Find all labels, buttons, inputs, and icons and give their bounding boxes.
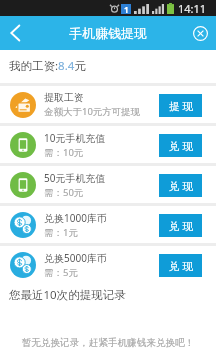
- button[interactable]: 提 现: [159, 94, 202, 117]
- staticText: 50元手机充值: [44, 171, 106, 185]
- staticText: 提取工资: [44, 91, 84, 104]
- staticText: 兑换5000库币: [44, 251, 107, 265]
- button[interactable]: Close: [184, 16, 216, 50]
- button[interactable]: 兑 现: [159, 134, 202, 157]
- staticText: 需：1元: [44, 226, 78, 239]
- button[interactable]: 兑 现: [159, 174, 202, 197]
- staticText: 需：5元: [44, 266, 78, 279]
- staticText: 金额大于10元方可提现: [44, 105, 141, 118]
- staticText: 提 现: [169, 99, 193, 113]
- staticText: 需：10元: [44, 146, 84, 159]
- button[interactable]: 50元手机充值: [0, 166, 216, 203]
- staticText: 兑 现: [169, 139, 193, 153]
- staticText: 兑 现: [169, 219, 193, 233]
- button[interactable]: 兑 现: [159, 254, 202, 277]
- staticText: 14:11: [178, 1, 207, 16]
- button[interactable]: 10元手机充值: [0, 126, 216, 163]
- staticText: 兑换1000库币: [44, 211, 107, 225]
- staticText: 我的工资:8.4元: [9, 58, 86, 74]
- staticText: 10元手机充值: [44, 131, 106, 145]
- staticText: 暂无兑换记录，赶紧手机赚钱来兑换吧！: [8, 337, 208, 349]
- button[interactable]: Back: [0, 16, 30, 50]
- staticText: 手机赚钱提现: [69, 25, 147, 41]
- staticText: 您最近10次的提现记录: [9, 287, 126, 303]
- staticText: 兑 现: [169, 259, 193, 273]
- staticText: 兑 现: [169, 179, 193, 193]
- staticText: 需：50元: [44, 186, 84, 199]
- button[interactable]: 兑换1000库币: [0, 206, 216, 243]
- button[interactable]: 提取工资: [0, 86, 216, 123]
- button[interactable]: 兑换5000库币: [0, 246, 216, 283]
- staticText: 1: [124, 4, 129, 14]
- button[interactable]: 兑 现: [159, 214, 202, 237]
